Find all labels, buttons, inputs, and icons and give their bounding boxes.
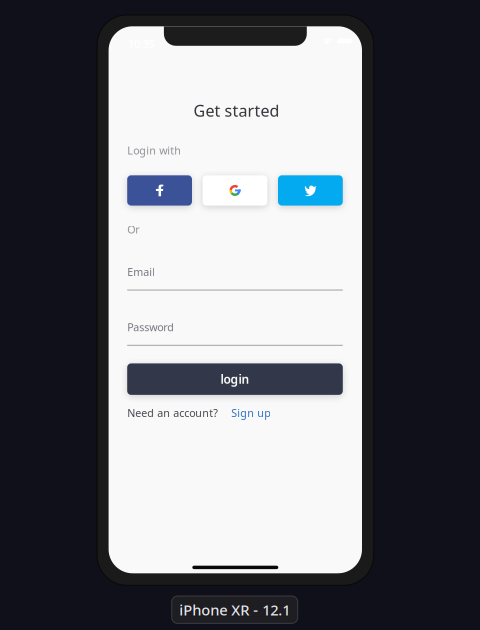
staticText: Get started	[193, 100, 279, 121]
staticText: login	[220, 371, 249, 387]
staticText: iPhone XR - 12.1	[179, 600, 290, 619]
button[interactable]: iPhone XR - 12.1	[172, 596, 298, 623]
button[interactable]: login	[127, 363, 343, 395]
staticText: Sign up	[231, 406, 271, 420]
button[interactable]: Sign up	[231, 406, 271, 420]
staticText: Or	[127, 222, 139, 236]
button[interactable]: Continue with Facebook	[127, 175, 192, 206]
staticText: Email	[127, 265, 155, 279]
button[interactable]: Continue with Twitter	[278, 175, 343, 206]
staticText: Need an account?	[127, 406, 218, 420]
staticText: Password	[127, 320, 174, 334]
staticText: Login with	[127, 143, 181, 157]
button[interactable]: Continue with Google	[203, 175, 267, 206]
